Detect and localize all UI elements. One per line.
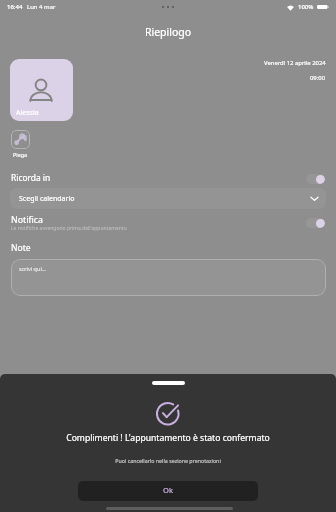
staticText: Puoi cancellarlo nella sezione prenotazi… xyxy=(0,457,336,464)
staticText: Ricorda in xyxy=(11,172,51,183)
button[interactable]: Alessia xyxy=(10,59,73,121)
button[interactable]: Piega xyxy=(11,130,30,149)
button[interactable]: Attiva xyxy=(306,218,325,228)
staticText: Riepilogo xyxy=(0,25,336,39)
staticText: Alessia xyxy=(16,108,39,118)
staticText: Ok xyxy=(163,485,173,495)
staticText: 100% xyxy=(298,3,314,11)
button[interactable]: Attiva xyxy=(306,174,325,184)
staticText: Note xyxy=(11,242,31,254)
button[interactable]: Scegli calendario xyxy=(10,188,326,209)
staticText: 16:44 xyxy=(7,3,23,11)
staticText: Le notifiche avvengono prima dell'appunt… xyxy=(11,225,127,232)
staticText: scrivi qui... xyxy=(19,265,47,272)
staticText: Lun 4 mar xyxy=(27,3,56,11)
staticText: Complimenti ! L'appuntamento è stato con… xyxy=(0,432,336,444)
staticText: Piega xyxy=(13,151,28,158)
staticText: Scegli calendario xyxy=(19,194,75,204)
button[interactable]: scrivi qui... xyxy=(11,259,326,296)
staticText: 09:00 xyxy=(310,74,326,82)
staticText: Venerdì 12 aprile 2024 xyxy=(264,59,326,67)
button[interactable]: Ok xyxy=(78,481,258,501)
staticText: Notifica xyxy=(11,214,43,226)
